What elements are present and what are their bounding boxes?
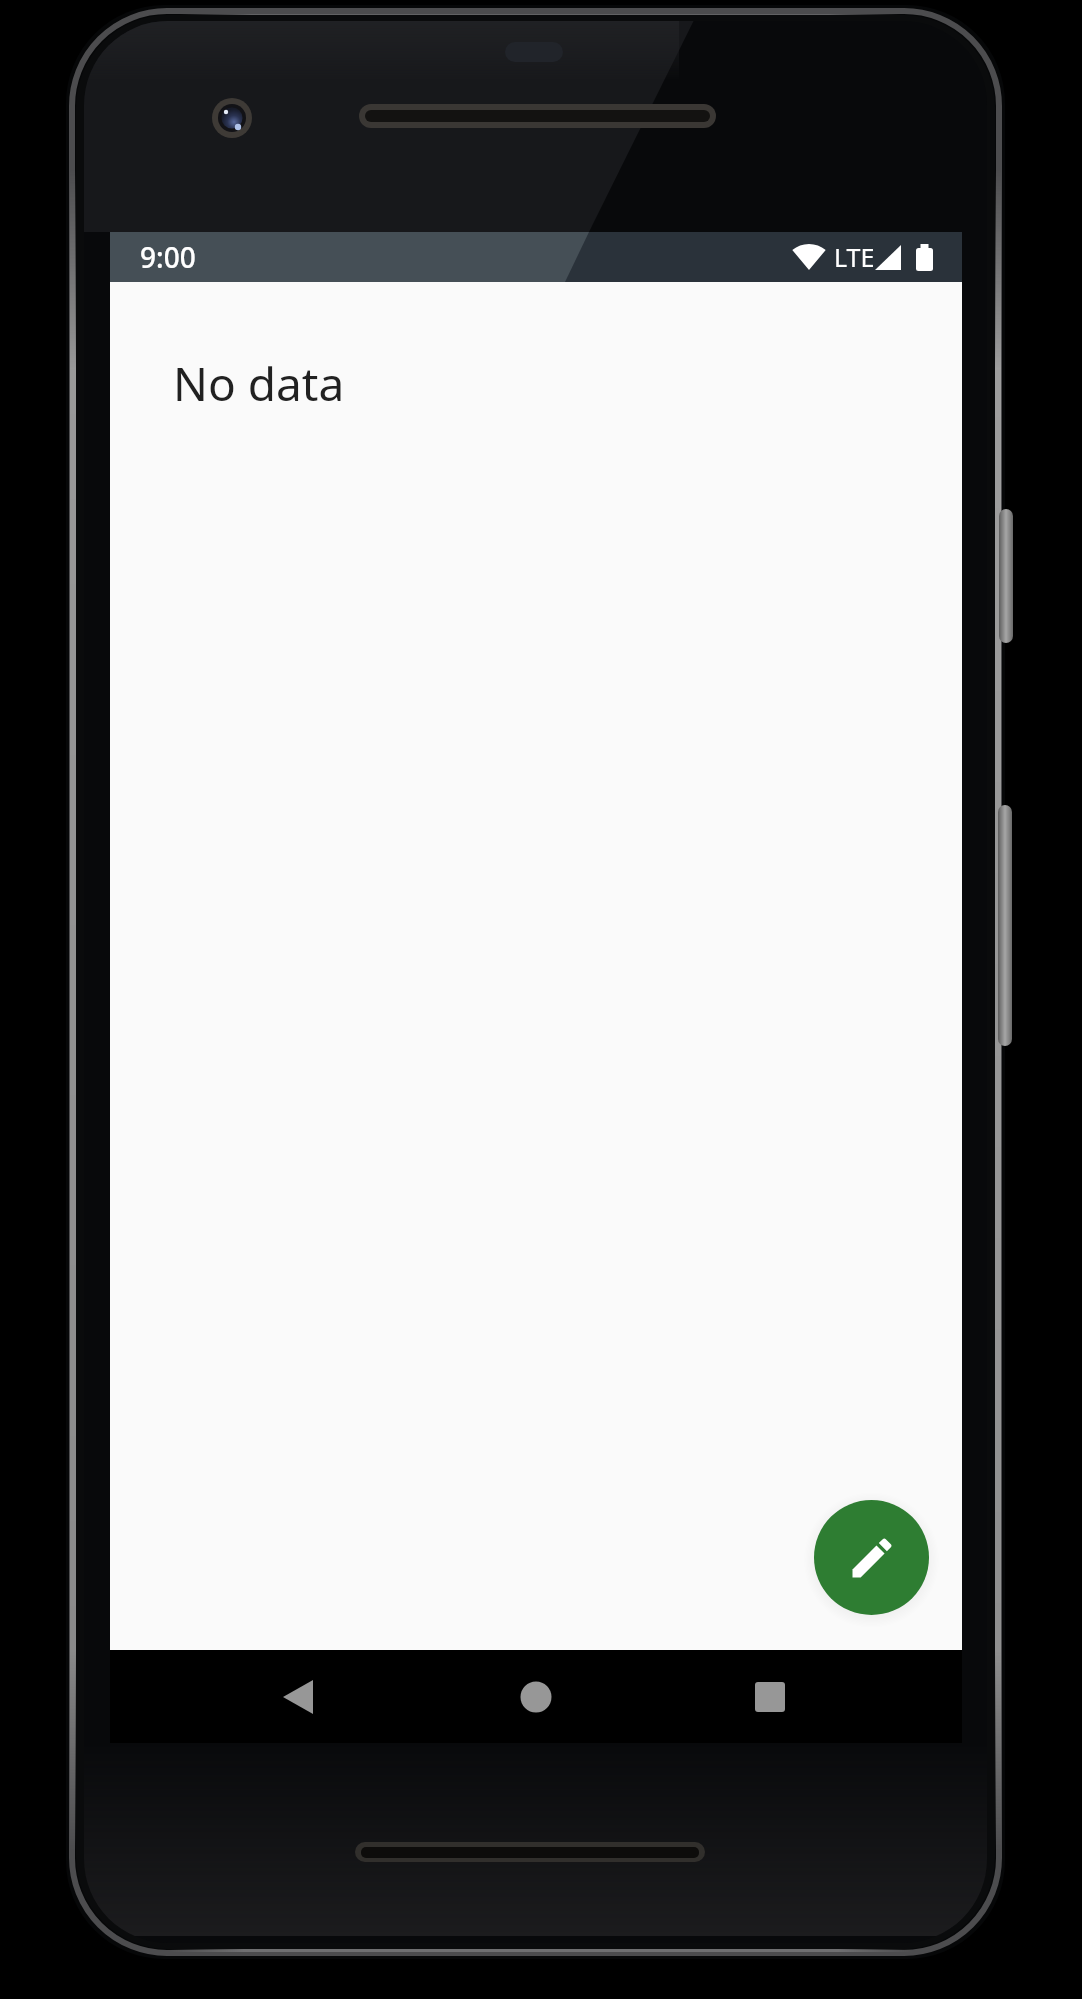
- staticText: No data: [173, 352, 345, 415]
- button[interactable]: [248, 1650, 348, 1743]
- staticText: LTE: [834, 240, 875, 274]
- button[interactable]: [720, 1650, 820, 1743]
- staticText: 9:00: [140, 238, 196, 276]
- button[interactable]: [814, 1500, 929, 1615]
- button[interactable]: [486, 1650, 586, 1743]
